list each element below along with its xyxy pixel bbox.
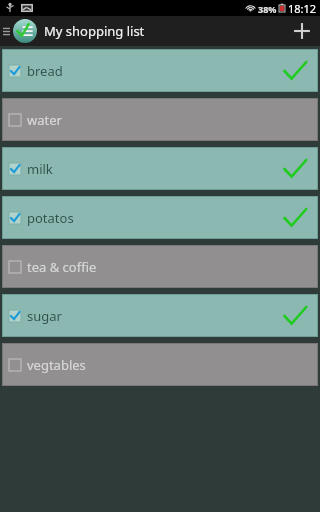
button[interactable]: water — [3, 99, 317, 140]
staticText: bread — [27, 62, 63, 80]
button[interactable]: Open navigation drawer — [0, 16, 12, 46]
staticText: water — [27, 111, 62, 129]
button[interactable]: vegtables — [3, 344, 317, 385]
staticText: milk — [27, 160, 53, 178]
staticText: 18:12 — [288, 1, 317, 16]
button[interactable]: bread — [3, 50, 317, 91]
staticText: 38% — [258, 3, 277, 15]
staticText: vegtables — [27, 356, 86, 374]
staticText: sugar — [27, 307, 62, 325]
staticText: potatos — [27, 209, 74, 227]
button[interactable]: sugar — [3, 295, 317, 336]
button[interactable]: tea & coffie — [3, 246, 317, 287]
button[interactable]: milk — [3, 148, 317, 189]
staticText: My shopping list — [44, 22, 145, 40]
button[interactable]: Add item — [284, 16, 320, 46]
button[interactable]: potatos — [3, 197, 317, 238]
staticText: tea & coffie — [27, 258, 97, 276]
